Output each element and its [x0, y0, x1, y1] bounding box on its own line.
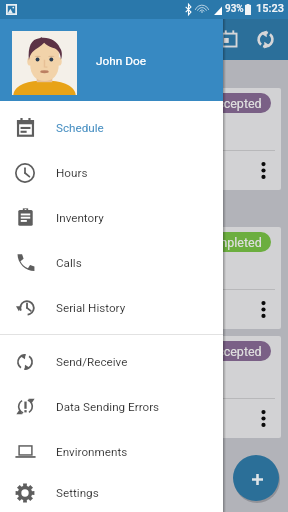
button[interactable]: Accepted [7, 88, 281, 190]
staticText: Calls [56, 256, 82, 270]
button[interactable]: Settings [0, 474, 223, 512]
staticText: Environments [56, 445, 128, 459]
button[interactable]: Serial History [0, 285, 223, 330]
button[interactable]: Accepted [7, 336, 281, 438]
button[interactable]: Schedule [0, 105, 223, 150]
button[interactable]: More options [248, 404, 278, 434]
button[interactable]: Today [209, 19, 249, 59]
staticText: Accepted [209, 96, 262, 111]
staticText: John Doe [96, 54, 146, 68]
button[interactable]: Sync [245, 19, 285, 59]
staticText: Completed [201, 235, 262, 250]
button[interactable]: Completed [7, 227, 281, 329]
button[interactable]: Send/Receive [0, 339, 223, 384]
staticText: Hours [56, 166, 88, 180]
staticText: 15:23 [256, 2, 284, 15]
staticText: Accepted [209, 344, 262, 359]
staticText: Send/Receive [56, 355, 128, 369]
button[interactable]: Environments [0, 429, 223, 474]
staticText: Schedule [56, 121, 104, 135]
button[interactable]: More options [248, 156, 278, 186]
button[interactable]: Inventory [0, 195, 223, 240]
button[interactable]: More options [248, 295, 278, 325]
staticText: 93% [225, 3, 244, 15]
staticText: Settings [56, 486, 99, 500]
staticText: Data Sending Errors [56, 400, 160, 414]
button[interactable]: Data Sending Errors [0, 384, 223, 429]
button[interactable]: Calls [0, 240, 223, 285]
button[interactable]: Add [233, 455, 279, 501]
staticText: Serial History [56, 301, 126, 315]
button[interactable]: Hours [0, 150, 223, 195]
staticText: Inventory [56, 211, 104, 225]
